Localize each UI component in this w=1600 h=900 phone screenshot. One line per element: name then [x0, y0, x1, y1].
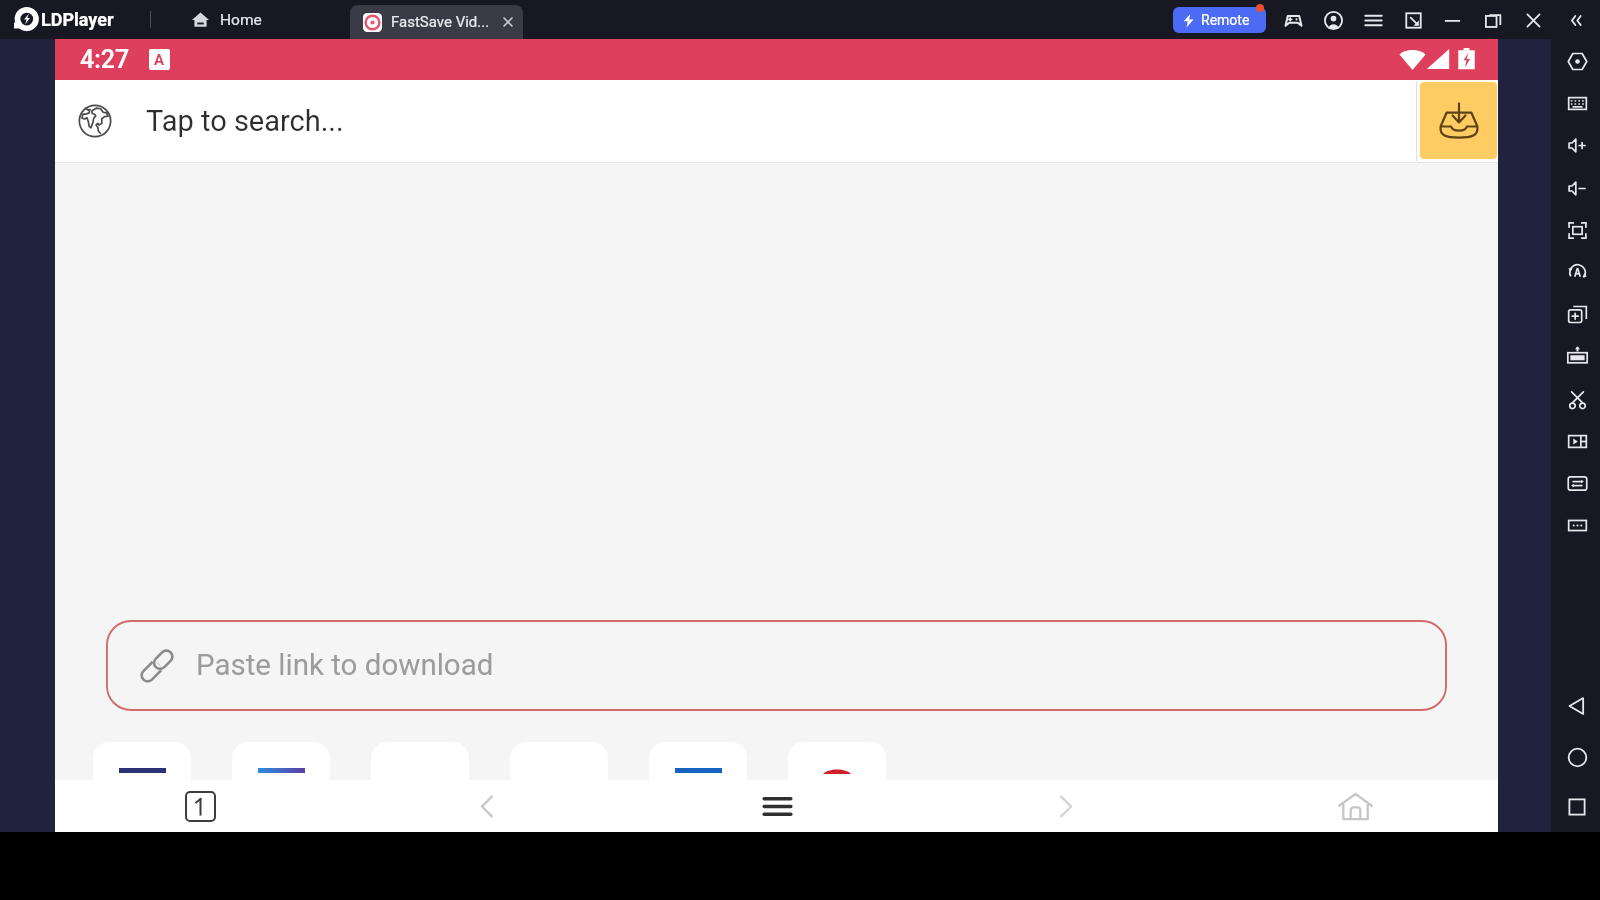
button[interactable]: Tap to search...	[55, 80, 1416, 162]
button[interactable]: Remote	[1173, 7, 1266, 33]
button[interactable]: Close tab	[498, 12, 518, 32]
button[interactable]: Fullscreen	[1560, 213, 1594, 247]
button[interactable]: Forward	[1023, 780, 1107, 832]
staticText: Paste link to download	[196, 648, 494, 683]
button[interactable]: Rotate	[1560, 255, 1594, 289]
button[interactable]: Home	[181, 0, 272, 39]
button[interactable]	[93, 742, 191, 792]
button[interactable]	[649, 742, 747, 792]
button[interactable]: Menu	[735, 780, 819, 832]
staticText: LDPlayer	[41, 9, 114, 30]
button[interactable]: Volume down	[1560, 171, 1594, 205]
button[interactable]: Paste link to download	[106, 620, 1447, 711]
staticText: Home	[220, 11, 262, 29]
button[interactable]: Multi instance	[1560, 297, 1594, 331]
staticText: A	[154, 51, 165, 69]
button[interactable]: Location	[1560, 44, 1594, 78]
button[interactable]: FastSave Vid...	[350, 5, 523, 39]
button[interactable]: Back	[445, 780, 529, 832]
button[interactable]: Home	[1560, 740, 1594, 774]
button[interactable]: Install APK	[1560, 339, 1594, 373]
button[interactable]: Record	[1560, 424, 1594, 458]
button[interactable]: Home	[1313, 780, 1397, 832]
button[interactable]: Keyboard	[1560, 86, 1594, 120]
button[interactable]: Account	[1318, 5, 1348, 35]
button[interactable]: More	[1560, 508, 1594, 542]
staticText: Remote	[1201, 12, 1250, 28]
button[interactable]: Sync	[1560, 466, 1594, 500]
button[interactable]	[232, 742, 330, 792]
button[interactable]: Tabs	[158, 780, 242, 832]
button[interactable]: Menu	[1358, 5, 1388, 35]
staticText: FastSave Vid...	[391, 13, 490, 31]
button[interactable]: Collapse	[1561, 5, 1591, 35]
button[interactable]: Back	[1560, 689, 1594, 723]
staticText: Tap to search...	[146, 104, 344, 138]
button[interactable]: Volume up	[1560, 128, 1594, 162]
button[interactable]: Maximize	[1478, 5, 1508, 35]
button[interactable]: Downloads	[1420, 82, 1497, 159]
button[interactable]: Minimize	[1437, 5, 1467, 35]
staticText: 4:27	[80, 45, 130, 74]
button[interactable]: Gamepad	[1278, 5, 1308, 35]
button[interactable]	[788, 742, 886, 792]
button[interactable]: Resize	[1398, 5, 1428, 35]
button[interactable]: Close	[1518, 5, 1548, 35]
button[interactable]: Cut	[1560, 382, 1594, 416]
button[interactable]: Recents	[1560, 790, 1594, 824]
